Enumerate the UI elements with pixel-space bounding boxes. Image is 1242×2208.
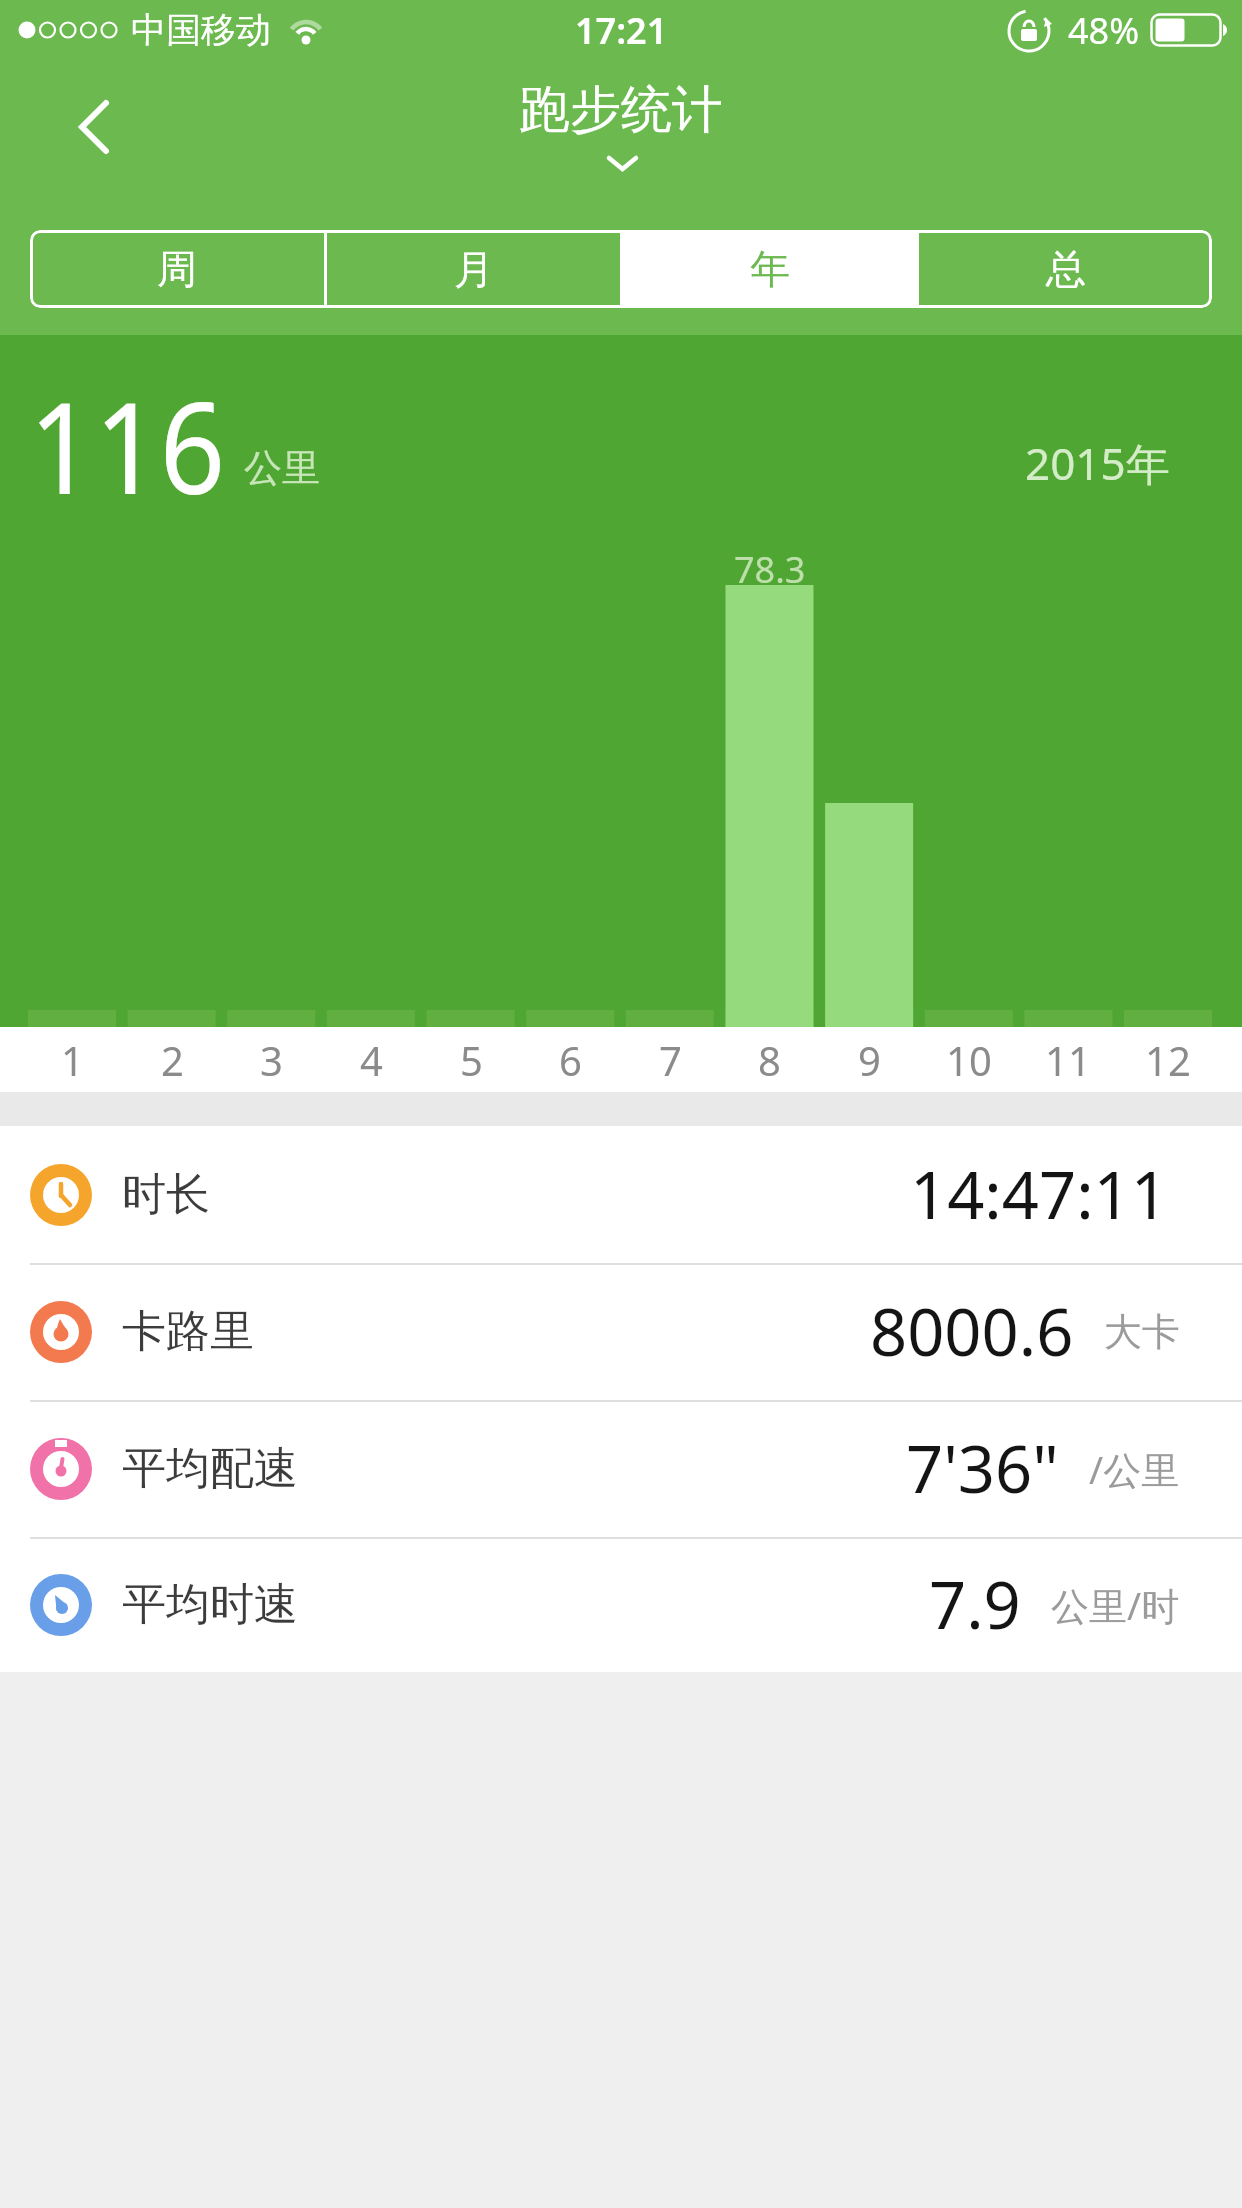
staticText: 8000.6 [870,1287,1074,1376]
staticText: 17:21 [575,6,668,55]
staticText: 8 [758,1033,781,1087]
staticText: 跑步统计 [519,78,723,142]
staticText: 1 [61,1033,84,1087]
staticText: 7.9 [929,1560,1021,1649]
staticText: 总 [1046,244,1086,294]
button[interactable]: 月 [327,230,620,308]
staticText: 公里 [244,444,320,492]
button[interactable]: 时长 [0,1126,1242,1263]
staticText: 116 [29,358,225,531]
staticText: 2 [161,1033,184,1087]
staticText: 9 [858,1033,881,1087]
staticText: 12 [1145,1033,1191,1087]
staticText: 卡路里 [122,1304,254,1359]
staticText: 7 [659,1033,682,1087]
staticText: 11 [1045,1033,1091,1087]
staticText: 6 [559,1033,582,1087]
staticText: 公里/时 [1051,1579,1180,1631]
staticText: 14:47:11 [910,1150,1168,1239]
staticText: 周 [157,244,197,294]
staticText: /公里 [1089,1443,1180,1495]
staticText: 48% [1068,6,1140,55]
staticText: 4 [360,1033,383,1087]
button[interactable]: 平均配速 [0,1400,1242,1537]
button[interactable]: 周 [30,230,324,308]
button[interactable] [56,84,136,170]
staticText: 年 [750,244,790,294]
button[interactable]: 卡路里 [0,1263,1242,1400]
staticText: 5 [460,1033,483,1087]
staticText: 3 [260,1033,283,1087]
button[interactable]: 平均时速 [0,1537,1242,1672]
staticText: 10 [946,1033,992,1087]
staticText: 时长 [122,1167,210,1222]
staticText: 2015年 [1025,433,1170,493]
button[interactable]: 年 [623,230,916,308]
staticText: 平均时速 [122,1577,298,1632]
staticText: 78.3 [734,545,806,589]
staticText: 7'36" [906,1424,1059,1513]
staticText: 平均配速 [122,1441,298,1496]
staticText: 月 [454,244,494,294]
staticText: 中国移动 [131,8,271,52]
staticText: 大卡 [1104,1308,1180,1356]
button[interactable]: 总 [919,230,1212,308]
